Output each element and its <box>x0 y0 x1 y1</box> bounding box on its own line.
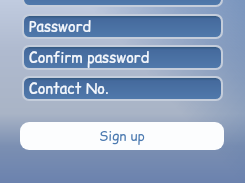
staticText: Contact No. <box>29 79 109 99</box>
button[interactable] <box>24 0 221 5</box>
button[interactable]: Contact No. <box>24 78 221 99</box>
button[interactable]: Sign up <box>20 122 224 150</box>
staticText: Sign up <box>99 127 145 146</box>
button[interactable]: Password <box>24 16 221 37</box>
button[interactable]: Confirm password <box>24 47 221 68</box>
staticText: Password <box>29 17 92 37</box>
staticText: Confirm password <box>29 48 150 68</box>
